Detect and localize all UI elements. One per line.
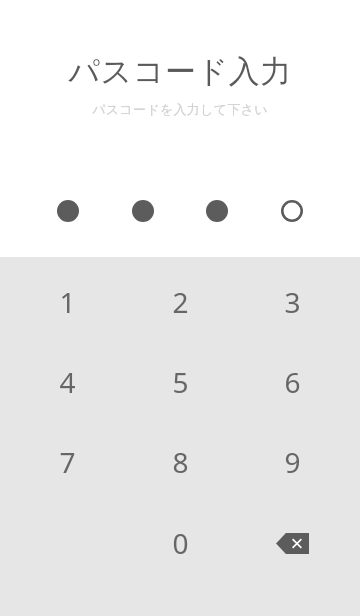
button[interactable]: 5: [132, 347, 228, 417]
staticText: 3: [284, 283, 301, 321]
staticText: 8: [172, 443, 189, 481]
button[interactable]: Backspace: [244, 508, 340, 578]
staticText: 6: [284, 363, 301, 401]
button[interactable]: 3: [244, 267, 340, 337]
staticText: 0: [172, 524, 189, 562]
staticText: 2: [172, 283, 189, 321]
button[interactable]: 4: [19, 347, 115, 417]
staticText: 5: [172, 363, 189, 401]
staticText: 4: [59, 363, 76, 401]
staticText: パスコード入力: [68, 52, 292, 91]
staticText: 7: [59, 443, 76, 481]
button[interactable]: 2: [132, 267, 228, 337]
button[interactable]: 6: [244, 347, 340, 417]
button[interactable]: 9: [244, 427, 340, 497]
button[interactable]: 1: [19, 267, 115, 337]
staticText: 1: [59, 283, 76, 321]
staticText: 9: [284, 443, 301, 481]
button[interactable]: 8: [132, 427, 228, 497]
button[interactable]: 0: [132, 508, 228, 578]
button[interactable]: 7: [19, 427, 115, 497]
staticText: パスコードを入力して下さい: [92, 101, 268, 117]
